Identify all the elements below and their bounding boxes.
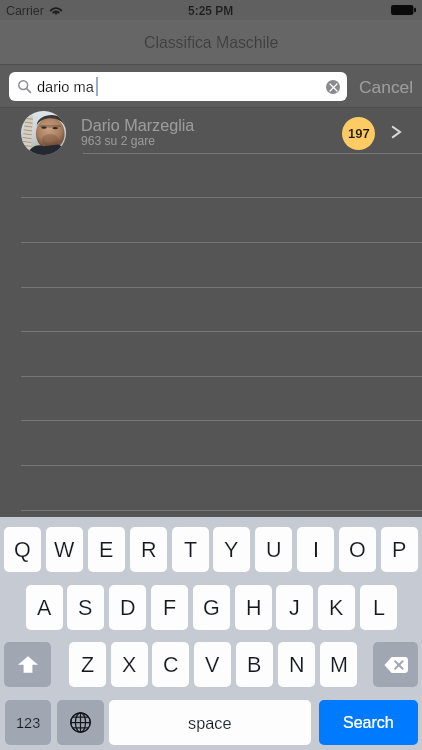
staticText: space: [188, 714, 232, 732]
button[interactable]: Switch keyboard: [57, 700, 104, 745]
button[interactable]: J: [276, 585, 313, 630]
staticText: T: [184, 538, 198, 562]
staticText: Classifica Maschile: [144, 34, 279, 52]
button[interactable]: Dario Marzeglia: [0, 109, 422, 153]
staticText: dario ma: [37, 79, 94, 95]
button[interactable]: Y: [213, 527, 250, 572]
staticText: P: [392, 538, 407, 562]
button[interactable]: A: [26, 585, 63, 630]
button[interactable]: N: [278, 642, 315, 687]
button[interactable]: D: [109, 585, 146, 630]
staticText: Search: [343, 714, 394, 732]
staticText: 197: [348, 126, 370, 141]
button[interactable]: G: [193, 585, 230, 630]
button[interactable]: W: [46, 527, 83, 572]
staticText: H: [246, 596, 262, 620]
staticText: Q: [14, 538, 31, 562]
button[interactable]: H: [235, 585, 272, 630]
button[interactable]: V: [194, 642, 231, 687]
staticText: R: [141, 538, 157, 562]
staticText: 5:25 PM: [188, 4, 234, 17]
staticText: C: [163, 653, 179, 677]
button[interactable]: K: [318, 585, 355, 630]
staticText: Y: [224, 538, 239, 562]
staticText: W: [54, 538, 75, 562]
button[interactable]: O: [339, 527, 376, 572]
staticText: N: [289, 653, 305, 677]
button[interactable]: Q: [4, 527, 41, 572]
staticText: K: [329, 596, 344, 620]
button[interactable]: C: [152, 642, 189, 687]
staticText: S: [78, 596, 93, 620]
button[interactable]: R: [130, 527, 167, 572]
staticText: G: [203, 596, 220, 620]
staticText: Z: [81, 653, 95, 677]
staticText: L: [373, 596, 385, 620]
staticText: J: [289, 596, 300, 620]
button[interactable]: F: [151, 585, 188, 630]
staticText: X: [122, 653, 137, 677]
button[interactable]: X: [111, 642, 148, 687]
staticText: V: [205, 653, 220, 677]
staticText: 963 su 2 gare: [81, 134, 155, 148]
button[interactable]: L: [360, 585, 397, 630]
staticText: A: [37, 596, 52, 620]
button[interactable]: T: [172, 527, 209, 572]
staticText: M: [330, 653, 348, 677]
button[interactable]: Z: [69, 642, 106, 687]
button[interactable]: M: [320, 642, 357, 687]
button[interactable]: dario ma: [9, 72, 347, 101]
staticText: O: [349, 538, 366, 562]
button[interactable]: U: [255, 527, 292, 572]
button[interactable]: Clear text: [326, 80, 340, 94]
staticText: D: [120, 596, 136, 620]
staticText: Cancel: [359, 77, 414, 96]
staticText: F: [163, 596, 177, 620]
staticText: Carrier: [6, 4, 44, 18]
button[interactable]: Cancel: [350, 65, 422, 108]
button[interactable]: S: [67, 585, 104, 630]
button[interactable]: I: [297, 527, 334, 572]
button[interactable]: Numbers: [5, 700, 51, 745]
staticText: U: [266, 538, 282, 562]
staticText: B: [247, 653, 262, 677]
button[interactable]: E: [88, 527, 125, 572]
staticText: I: [313, 538, 319, 562]
staticText: 123: [16, 715, 41, 731]
staticText: Dario Marzeglia: [81, 116, 195, 134]
button[interactable]: Backspace: [373, 642, 418, 687]
button[interactable]: Search: [319, 700, 418, 745]
button[interactable]: space: [109, 700, 311, 745]
button[interactable]: B: [236, 642, 273, 687]
staticText: E: [99, 538, 114, 562]
button[interactable]: P: [381, 527, 418, 572]
button[interactable]: Shift: [4, 642, 51, 687]
